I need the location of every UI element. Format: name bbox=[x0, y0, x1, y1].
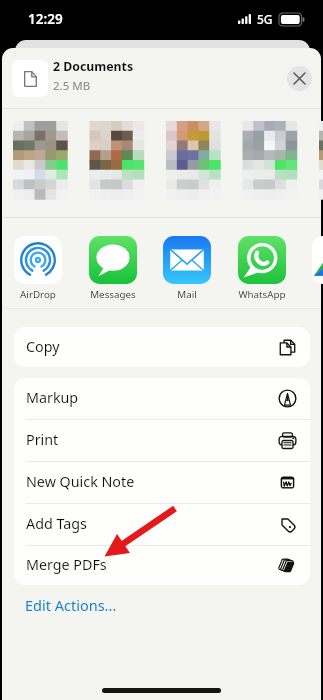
staticText: AirDrop bbox=[20, 288, 56, 301]
staticText: 2 Documents bbox=[53, 58, 134, 75]
staticText: Edit Actions... bbox=[25, 595, 117, 615]
staticText: Markup bbox=[26, 388, 79, 407]
staticText: 12:29 bbox=[28, 10, 63, 28]
button[interactable]: Add Tags bbox=[14, 504, 310, 545]
staticText: 5G bbox=[257, 11, 273, 27]
staticText: Mail bbox=[177, 288, 197, 301]
button[interactable]: Copy bbox=[14, 327, 310, 367]
button[interactable]: Messages bbox=[89, 236, 137, 301]
button[interactable]: Mail bbox=[163, 236, 211, 301]
button[interactable]: Print bbox=[14, 420, 310, 461]
button[interactable]: Merge PDFs bbox=[14, 546, 310, 585]
button[interactable]: New Quick Note bbox=[14, 462, 310, 503]
staticText: Print bbox=[26, 430, 59, 449]
button[interactable]: WhatsApp bbox=[238, 236, 286, 301]
button[interactable]: Edit Actions... bbox=[25, 595, 117, 615]
staticText: 2.5 MB bbox=[53, 78, 91, 94]
staticText: New Quick Note bbox=[26, 472, 135, 491]
button[interactable]: Drive bbox=[312, 236, 323, 301]
staticText: Messages bbox=[90, 288, 136, 301]
button[interactable]: AirDrop bbox=[14, 236, 62, 301]
staticText: WhatsApp bbox=[238, 288, 286, 301]
button[interactable]: Close bbox=[287, 66, 312, 91]
staticText: Copy bbox=[26, 337, 60, 356]
button[interactable]: Markup bbox=[14, 378, 310, 419]
staticText: Merge PDFs bbox=[26, 555, 107, 574]
staticText: Add Tags bbox=[26, 514, 87, 533]
